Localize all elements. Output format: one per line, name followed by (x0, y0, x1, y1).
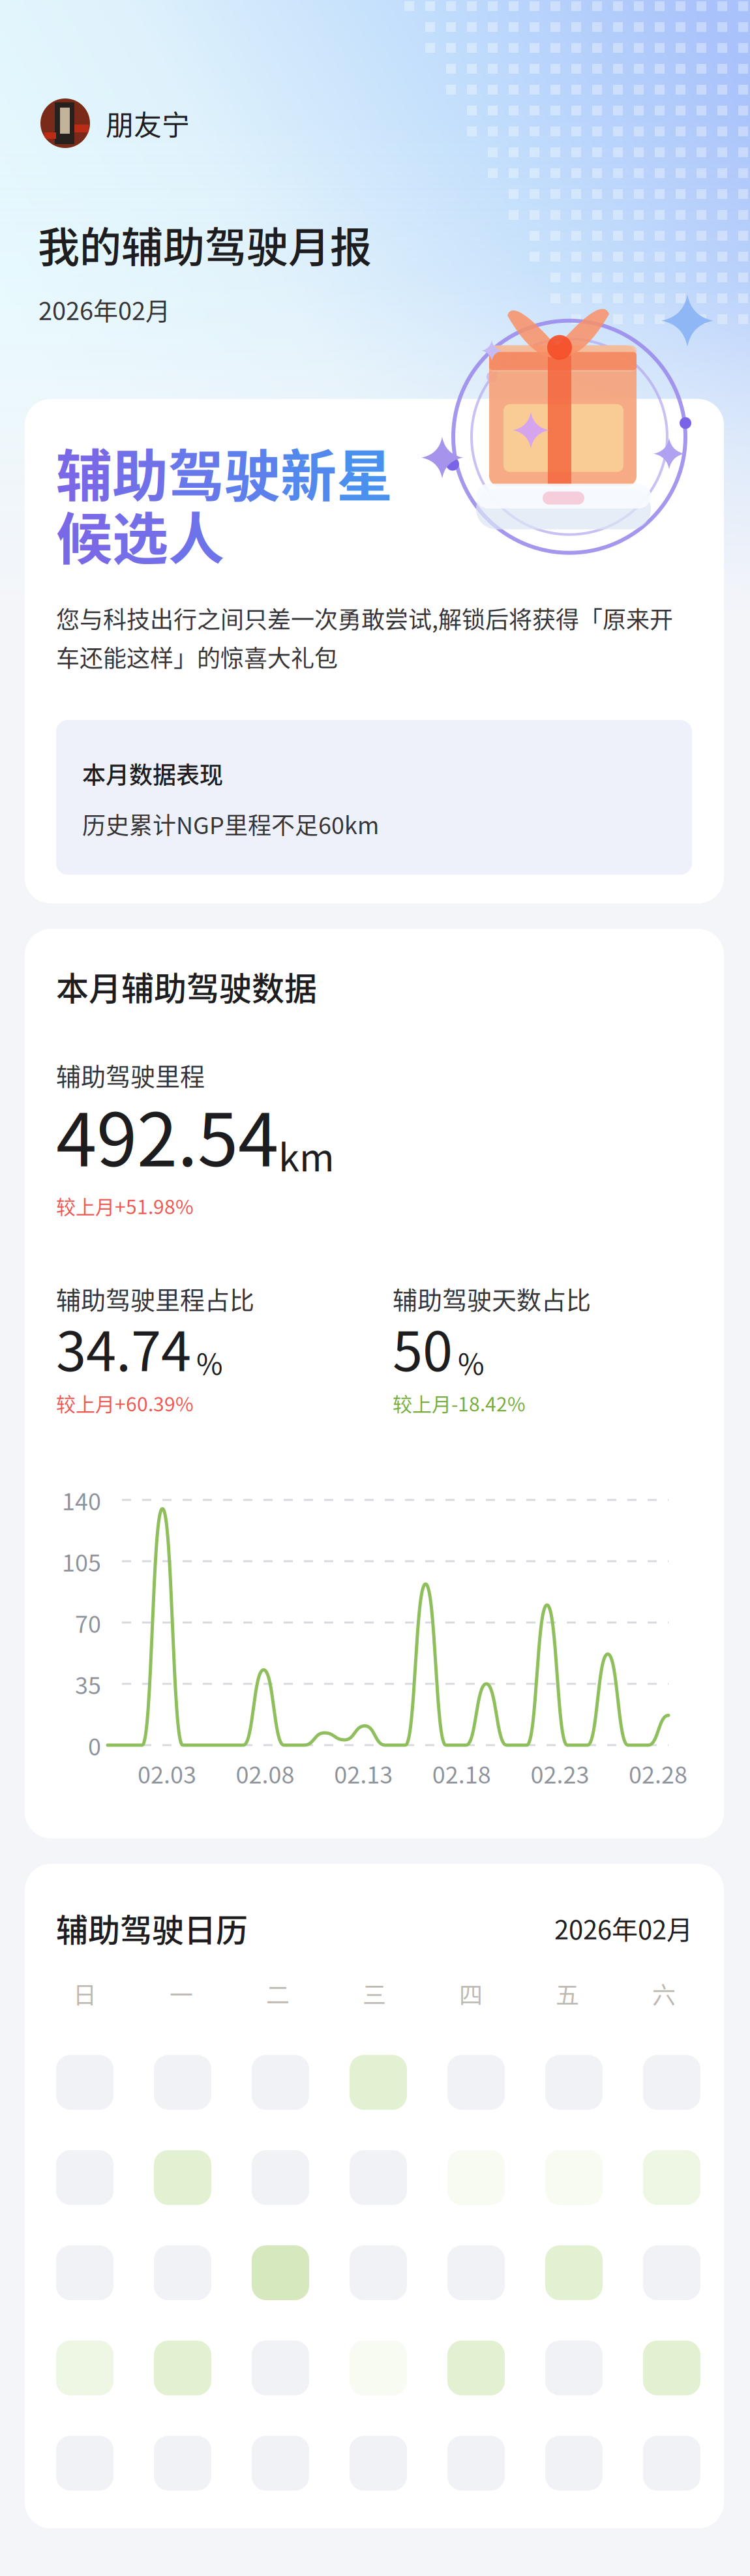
staticText: % (458, 1341, 485, 1383)
staticText: 二 (266, 1977, 290, 2011)
staticText: 02.13 (334, 1756, 393, 1790)
staticText: 历史累计NGP里程不足60km (82, 807, 379, 841)
staticText: 50 (393, 1308, 453, 1387)
staticText: 新 (280, 432, 337, 513)
staticText: 02.08 (236, 1756, 295, 1790)
staticText: 2026年02月 (38, 291, 170, 327)
staticText: 辅助驾驶里程 (56, 1057, 205, 1093)
staticText: 一 (170, 1977, 193, 2011)
staticText: 本月辅助驾驶数据 (56, 963, 317, 1010)
staticText: 五 (556, 1977, 579, 2011)
staticText: 驾 (168, 432, 224, 513)
staticText: 六 (652, 1977, 676, 2011)
staticText: 辅助驾驶里程占比 (56, 1280, 254, 1316)
staticText: 驶 (224, 432, 280, 513)
staticText: 助 (112, 432, 168, 513)
staticText: 星 (337, 432, 393, 513)
staticText: 较上月-18.42% (393, 1389, 526, 1417)
staticText: 35 (75, 1667, 101, 1701)
staticText: 四 (459, 1977, 483, 2011)
staticText: 选 (112, 494, 168, 576)
staticText: 2026年02月 (554, 1909, 693, 1947)
staticText: % (196, 1341, 223, 1383)
staticText: 492.54 (56, 1082, 278, 1188)
staticText: 02.03 (138, 1756, 196, 1790)
staticText: km (278, 1128, 335, 1182)
staticText: 日 (73, 1977, 97, 2011)
staticText: 辅助驾驶日历 (56, 1905, 248, 1951)
staticText: 02.18 (432, 1756, 491, 1790)
staticText: 105 (62, 1544, 101, 1578)
staticText: 本月数据表现 (82, 756, 223, 790)
staticText: 我的辅助驾驶月报 (38, 214, 372, 274)
staticText: 02.23 (530, 1756, 589, 1790)
staticText: 您与科技出行之间只差一次勇敢尝试,解锁后将获得「原来开 (56, 601, 673, 635)
staticText: 140 (62, 1483, 101, 1517)
staticText: 34.74 (56, 1308, 191, 1387)
staticText: 人 (168, 494, 224, 576)
staticText: 朋友宁 (106, 103, 190, 144)
staticText: 车还能这样」的惊喜大礼包 (56, 640, 338, 674)
staticText: 辅助驾驶天数占比 (393, 1280, 591, 1316)
staticText: 较上月+60.39% (56, 1389, 194, 1417)
staticText: 0 (88, 1728, 101, 1762)
staticText: 较上月+51.98% (56, 1191, 194, 1220)
staticText: 辅 (56, 432, 112, 513)
staticText: 70 (75, 1606, 101, 1640)
button[interactable]: 朋友宁 (0, 98, 280, 149)
staticText: 三 (363, 1977, 386, 2011)
staticText: 02.28 (629, 1756, 687, 1790)
staticText: 候 (56, 494, 112, 576)
